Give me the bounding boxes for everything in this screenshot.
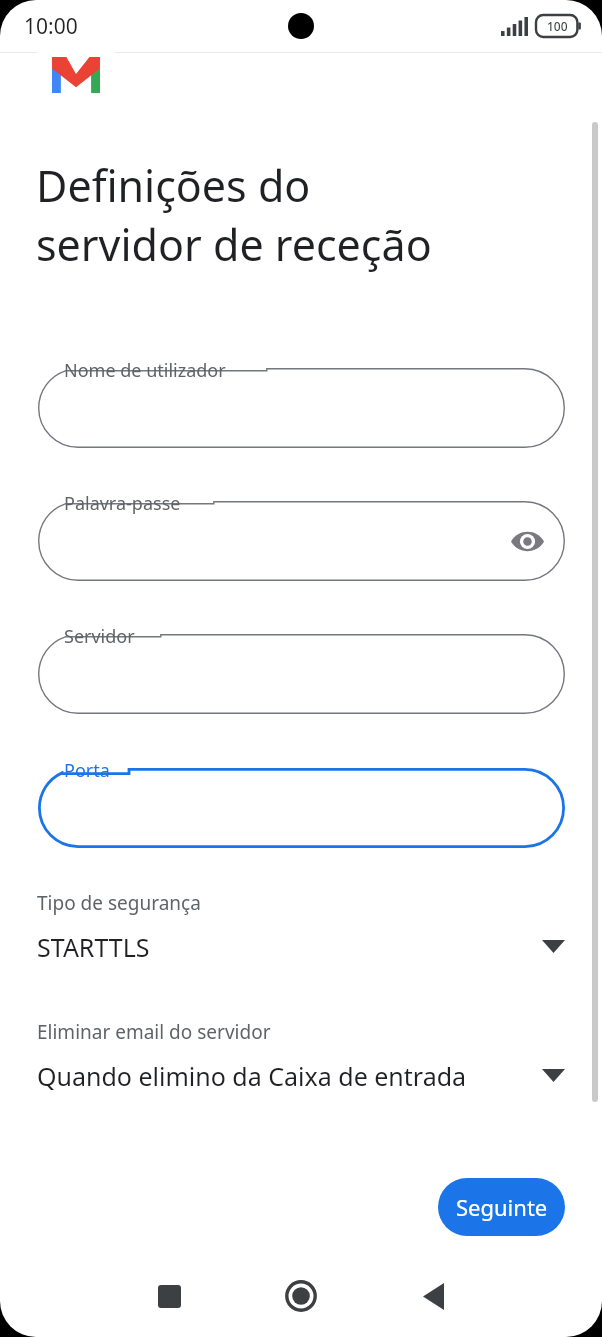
button[interactable]: Tipo de segurança xyxy=(37,890,565,978)
button[interactable]: Seguinte xyxy=(438,1178,565,1236)
staticText: Servidor xyxy=(64,624,135,649)
staticText: Quando elimino da Caixa de entrada xyxy=(37,1059,467,1093)
button[interactable]: Recents xyxy=(141,1268,197,1324)
staticText: Tipo de segurança xyxy=(37,890,201,916)
button[interactable]: Servidor xyxy=(38,634,565,714)
staticText: Seguinte xyxy=(456,1192,548,1222)
button[interactable]: Mostrar palavra-passe xyxy=(503,517,551,565)
staticText: STARTTLS xyxy=(37,930,150,964)
staticText: Eliminar email do servidor xyxy=(37,1019,271,1045)
button[interactable]: Nome de utilizador xyxy=(38,368,565,448)
staticText: 10:00 xyxy=(24,12,78,41)
staticText: Definições do xyxy=(36,156,311,215)
button[interactable]: Back xyxy=(405,1268,461,1324)
staticText: Porta xyxy=(64,758,110,783)
button[interactable]: Home xyxy=(273,1268,329,1324)
staticText: Palavra-passe xyxy=(64,491,181,516)
button[interactable]: Eliminar email do servidor xyxy=(37,1019,565,1107)
button[interactable]: Palavra-passe xyxy=(38,501,565,581)
staticText: Nome de utilizador xyxy=(64,358,226,383)
staticText: 100 xyxy=(547,18,568,34)
staticText: servidor de receção xyxy=(36,215,432,274)
button[interactable]: Porta xyxy=(38,768,565,848)
